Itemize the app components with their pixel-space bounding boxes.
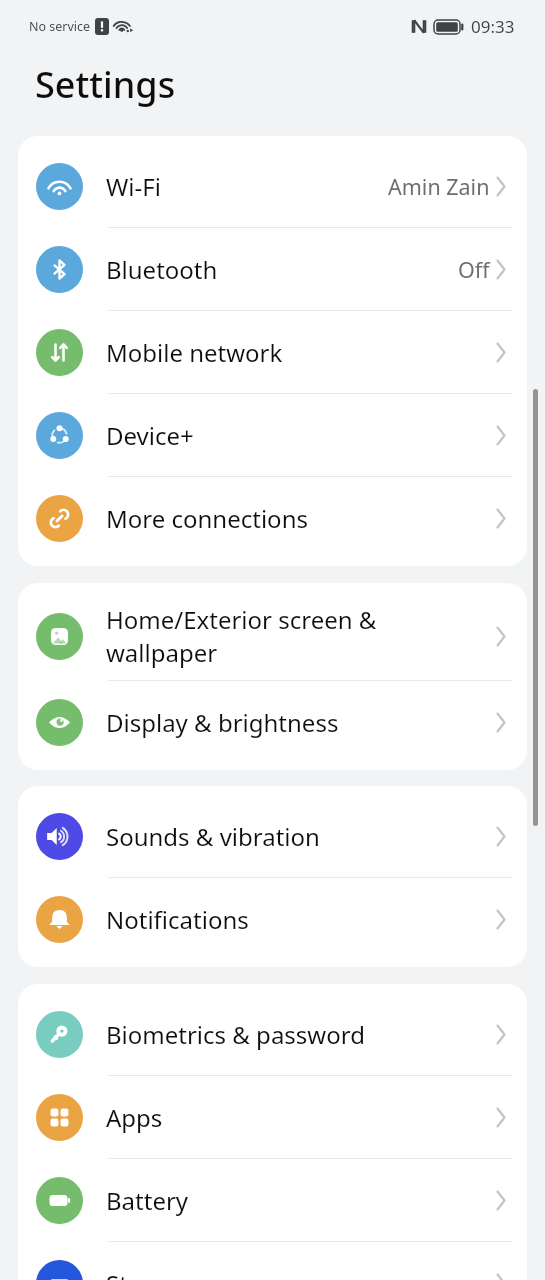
staticText: More connections [106, 502, 496, 535]
button[interactable]: Mobile network [18, 311, 527, 393]
other: Storage [36, 1260, 83, 1280]
staticText: Notifications [106, 903, 496, 936]
button[interactable]: Biometrics & password [18, 993, 527, 1075]
staticText: Amin Zain [388, 172, 490, 201]
staticText: Storage [106, 1267, 496, 1280]
button[interactable]: Device+ [18, 394, 527, 476]
other: Wi-Fi [36, 163, 83, 210]
staticText: Settings [35, 60, 176, 109]
other: Device+ [36, 412, 83, 459]
button[interactable]: Bluetooth [18, 228, 527, 310]
other: Notifications [36, 896, 83, 943]
button[interactable]: Storage [18, 1242, 527, 1280]
button[interactable]: Wi-Fi [18, 145, 527, 227]
staticText: Mobile network [106, 336, 496, 369]
other: Home/Exterior screen & wallpaper [36, 613, 83, 660]
staticText: Bluetooth [106, 253, 458, 286]
other: Sounds & vibration [36, 813, 83, 860]
staticText: Wi-Fi [106, 170, 388, 203]
staticText: No service [29, 18, 91, 35]
button[interactable]: Notifications [18, 878, 527, 960]
other: Apps [36, 1094, 83, 1141]
other: Bluetooth [36, 246, 83, 293]
staticText: Home/Exterior screen & wallpaper [106, 603, 496, 669]
other: More connections [36, 495, 83, 542]
button[interactable]: Battery [18, 1159, 527, 1241]
staticText: 09:33 [471, 15, 515, 38]
staticText: Sounds & vibration [106, 820, 496, 853]
staticText: Battery [106, 1184, 496, 1217]
staticText: Display & brightness [106, 706, 496, 739]
staticText: Biometrics & password [106, 1018, 496, 1051]
staticText: Device+ [106, 419, 496, 452]
other: Display & brightness [36, 699, 83, 746]
other: Battery [36, 1177, 83, 1224]
other: Mobile network [36, 329, 83, 376]
button[interactable]: Sounds & vibration [18, 795, 527, 877]
button[interactable]: Home/Exterior screen & wallpaper [18, 592, 527, 680]
button[interactable]: Apps [18, 1076, 527, 1158]
staticText: Apps [106, 1101, 496, 1134]
button[interactable]: More connections [18, 477, 527, 559]
button[interactable]: Display & brightness [18, 681, 527, 763]
other: Biometrics & password [36, 1011, 83, 1058]
staticText: Off [458, 255, 490, 284]
